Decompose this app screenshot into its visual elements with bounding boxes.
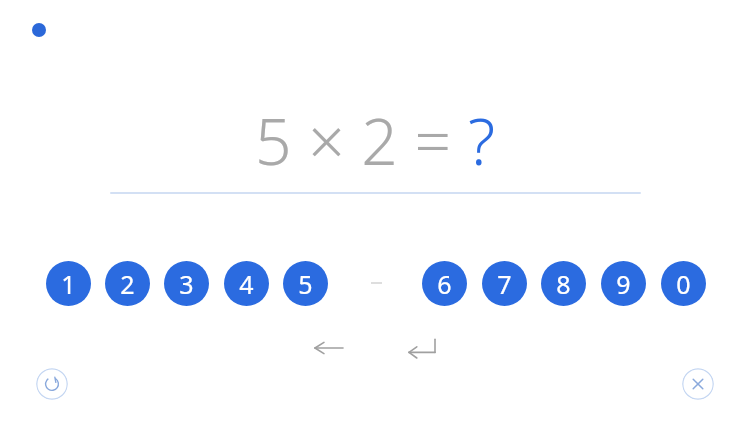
staticText: 1 xyxy=(61,267,76,301)
staticText: 5 xyxy=(298,267,313,301)
button[interactable]: Digit 5 xyxy=(283,261,328,306)
staticText: 7 xyxy=(497,267,512,301)
staticText: 0 xyxy=(676,267,691,301)
button[interactable]: Restart xyxy=(36,368,68,400)
button[interactable]: Backspace xyxy=(308,331,350,365)
button[interactable]: Close xyxy=(682,368,714,400)
staticText: 2 xyxy=(120,267,135,301)
button[interactable]: Digit 3 xyxy=(164,261,209,306)
button[interactable]: Digit 1 xyxy=(46,261,91,306)
button[interactable]: Digit 8 xyxy=(541,261,586,306)
button[interactable]: Digit 9 xyxy=(601,261,646,306)
staticText: 9 xyxy=(616,267,631,301)
staticText: 5 × 2 = xyxy=(255,97,468,184)
button[interactable]: Enter xyxy=(401,331,443,365)
button[interactable]: Digit 7 xyxy=(482,261,527,306)
button[interactable]: Digit 6 xyxy=(422,261,467,306)
button[interactable]: Digit 0 xyxy=(661,261,706,306)
button[interactable]: Digit 4 xyxy=(224,261,269,306)
button[interactable]: Digit 2 xyxy=(105,261,150,306)
staticText: ? xyxy=(468,97,496,184)
staticText: 3 xyxy=(179,267,194,301)
staticText: 8 xyxy=(556,267,571,301)
staticText: 4 xyxy=(239,267,254,301)
staticText: 6 xyxy=(437,267,452,301)
